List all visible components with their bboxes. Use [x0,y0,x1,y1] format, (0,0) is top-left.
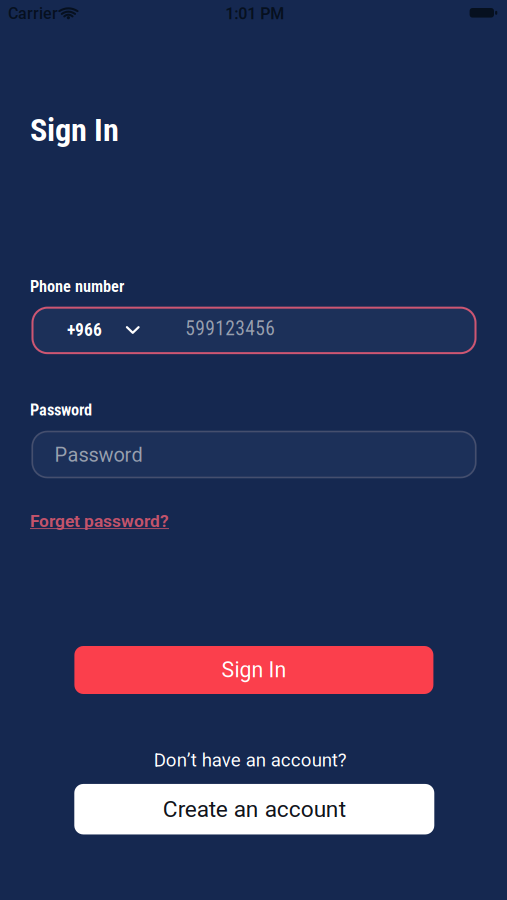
button[interactable]: Forget password? [30,511,330,531]
staticText: Phone number [30,277,124,296]
button[interactable]: Create an account [74,784,434,834]
staticText: Sign In [30,111,119,149]
staticText: 599123456 [185,317,275,340]
staticText: 1:01 PM [225,5,284,23]
staticText: Forget password? [30,511,169,531]
staticText: +966 [67,320,102,340]
button[interactable]: Country code [67,320,140,340]
staticText: Don’t have an account? [154,749,347,771]
staticText: Carrier [8,4,58,23]
staticText: Password [30,400,92,419]
button[interactable]: Sign In [74,646,433,694]
staticText: Password [55,443,143,466]
staticText: Sign In [221,658,286,682]
staticText: Create an account [163,796,346,822]
